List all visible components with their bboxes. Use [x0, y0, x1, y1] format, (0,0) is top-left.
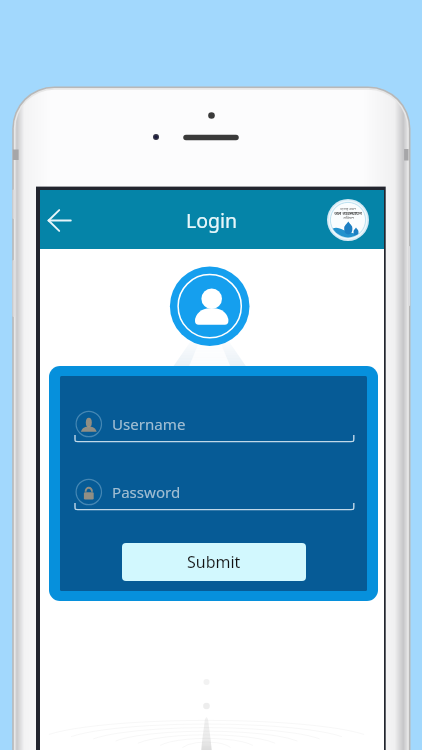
staticText: Username	[112, 414, 186, 435]
staticText: अभियान	[343, 215, 354, 220]
button[interactable]: Department logo	[327, 199, 369, 241]
staticText: महाराष्ट्र शासन	[340, 207, 356, 211]
button[interactable]: Username	[60, 398, 367, 450]
staticText: Password	[112, 482, 181, 503]
button[interactable]: Back	[40, 190, 94, 249]
button[interactable]: Submit	[122, 543, 306, 581]
staticText: Submit	[187, 551, 241, 573]
staticText: Login	[186, 207, 238, 234]
staticText: जल व्यवस्थापन	[334, 210, 362, 216]
button[interactable]: Password	[60, 466, 367, 518]
